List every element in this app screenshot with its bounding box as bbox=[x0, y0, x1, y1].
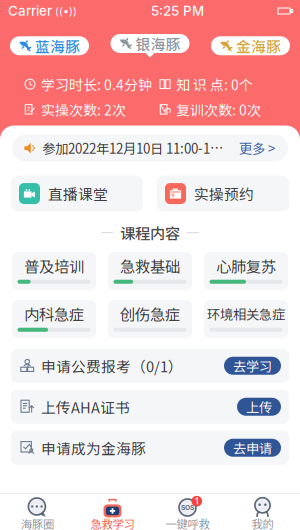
staticText: 心肺复苏 bbox=[216, 255, 276, 277]
button[interactable]: 创伤急症 bbox=[108, 300, 192, 338]
button[interactable]: 申请公费报考（0/1） bbox=[11, 349, 289, 383]
button[interactable]: 环境相关急症 bbox=[204, 300, 288, 338]
staticText: 申请成为金海豚 bbox=[41, 437, 146, 458]
staticText: 急救学习 bbox=[90, 515, 134, 530]
button[interactable]: 内科急症 bbox=[12, 300, 96, 338]
staticText: 上传AHA证书 bbox=[41, 396, 130, 417]
staticText: 申请公费报考（0/1） bbox=[41, 355, 183, 376]
staticText: 去学习 bbox=[233, 356, 272, 375]
staticText: 银海豚 bbox=[135, 33, 180, 54]
staticText: 内科急症 bbox=[24, 303, 84, 325]
staticText: 一键呼救 bbox=[165, 515, 209, 530]
button[interactable]: 蓝海豚 bbox=[10, 36, 89, 55]
button[interactable]: 上传AHA证书 bbox=[11, 390, 289, 424]
staticText: 实操次数: 2次 bbox=[41, 99, 126, 120]
staticText: 学习时长: 0.4分钟 bbox=[41, 74, 152, 94]
staticText: 复训次数: 0次 bbox=[176, 99, 261, 120]
button[interactable]: 直播课堂 bbox=[11, 175, 143, 211]
staticText: 课程内容 bbox=[120, 221, 180, 244]
button[interactable]: 海豚圈 bbox=[0, 493, 75, 530]
button[interactable]: 普及培训 bbox=[12, 252, 96, 290]
button[interactable]: 金海豚 bbox=[211, 36, 290, 55]
staticText: SOS bbox=[181, 503, 194, 512]
button[interactable]: 参加2022年12月10日 11:00-12:00复试测... bbox=[12, 134, 288, 161]
button[interactable]: 银海豚 bbox=[110, 34, 189, 57]
button[interactable]: 申请成为金海豚 bbox=[11, 431, 289, 465]
staticText: 参加2022年12月10日 11:00-12:00复试测... bbox=[42, 138, 227, 158]
staticText: 海豚圈 bbox=[21, 515, 54, 530]
staticText: 上传 bbox=[246, 397, 272, 416]
staticText: 普及培训 bbox=[24, 255, 84, 277]
staticText: Carrier bbox=[8, 3, 52, 19]
staticText: 更多 > bbox=[239, 138, 275, 158]
button[interactable]: 实操预约 bbox=[157, 175, 289, 211]
button[interactable]: 我的 bbox=[225, 493, 300, 530]
button[interactable]: SOS bbox=[150, 493, 225, 530]
staticText: 急救基础 bbox=[120, 255, 180, 277]
staticText: 我的 bbox=[251, 515, 273, 530]
button[interactable]: 急救学习 bbox=[75, 493, 150, 530]
staticText: 蓝海豚 bbox=[35, 35, 80, 56]
staticText: 知 识 点: 0个 bbox=[176, 74, 253, 94]
staticText: 金海豚 bbox=[236, 35, 281, 56]
button[interactable]: 心肺复苏 bbox=[204, 252, 288, 290]
button[interactable]: 急救基础 bbox=[108, 252, 192, 290]
staticText: 实操预约 bbox=[194, 183, 254, 204]
staticText: 1 bbox=[195, 495, 199, 507]
staticText: ((•)) bbox=[52, 4, 77, 17]
staticText: 直播课堂 bbox=[48, 183, 108, 204]
staticText: 5:25 PM bbox=[151, 3, 204, 19]
staticText: 去申请 bbox=[233, 438, 272, 457]
staticText: 创伤急症 bbox=[120, 303, 180, 325]
staticText: 环境相关急症 bbox=[207, 304, 285, 323]
